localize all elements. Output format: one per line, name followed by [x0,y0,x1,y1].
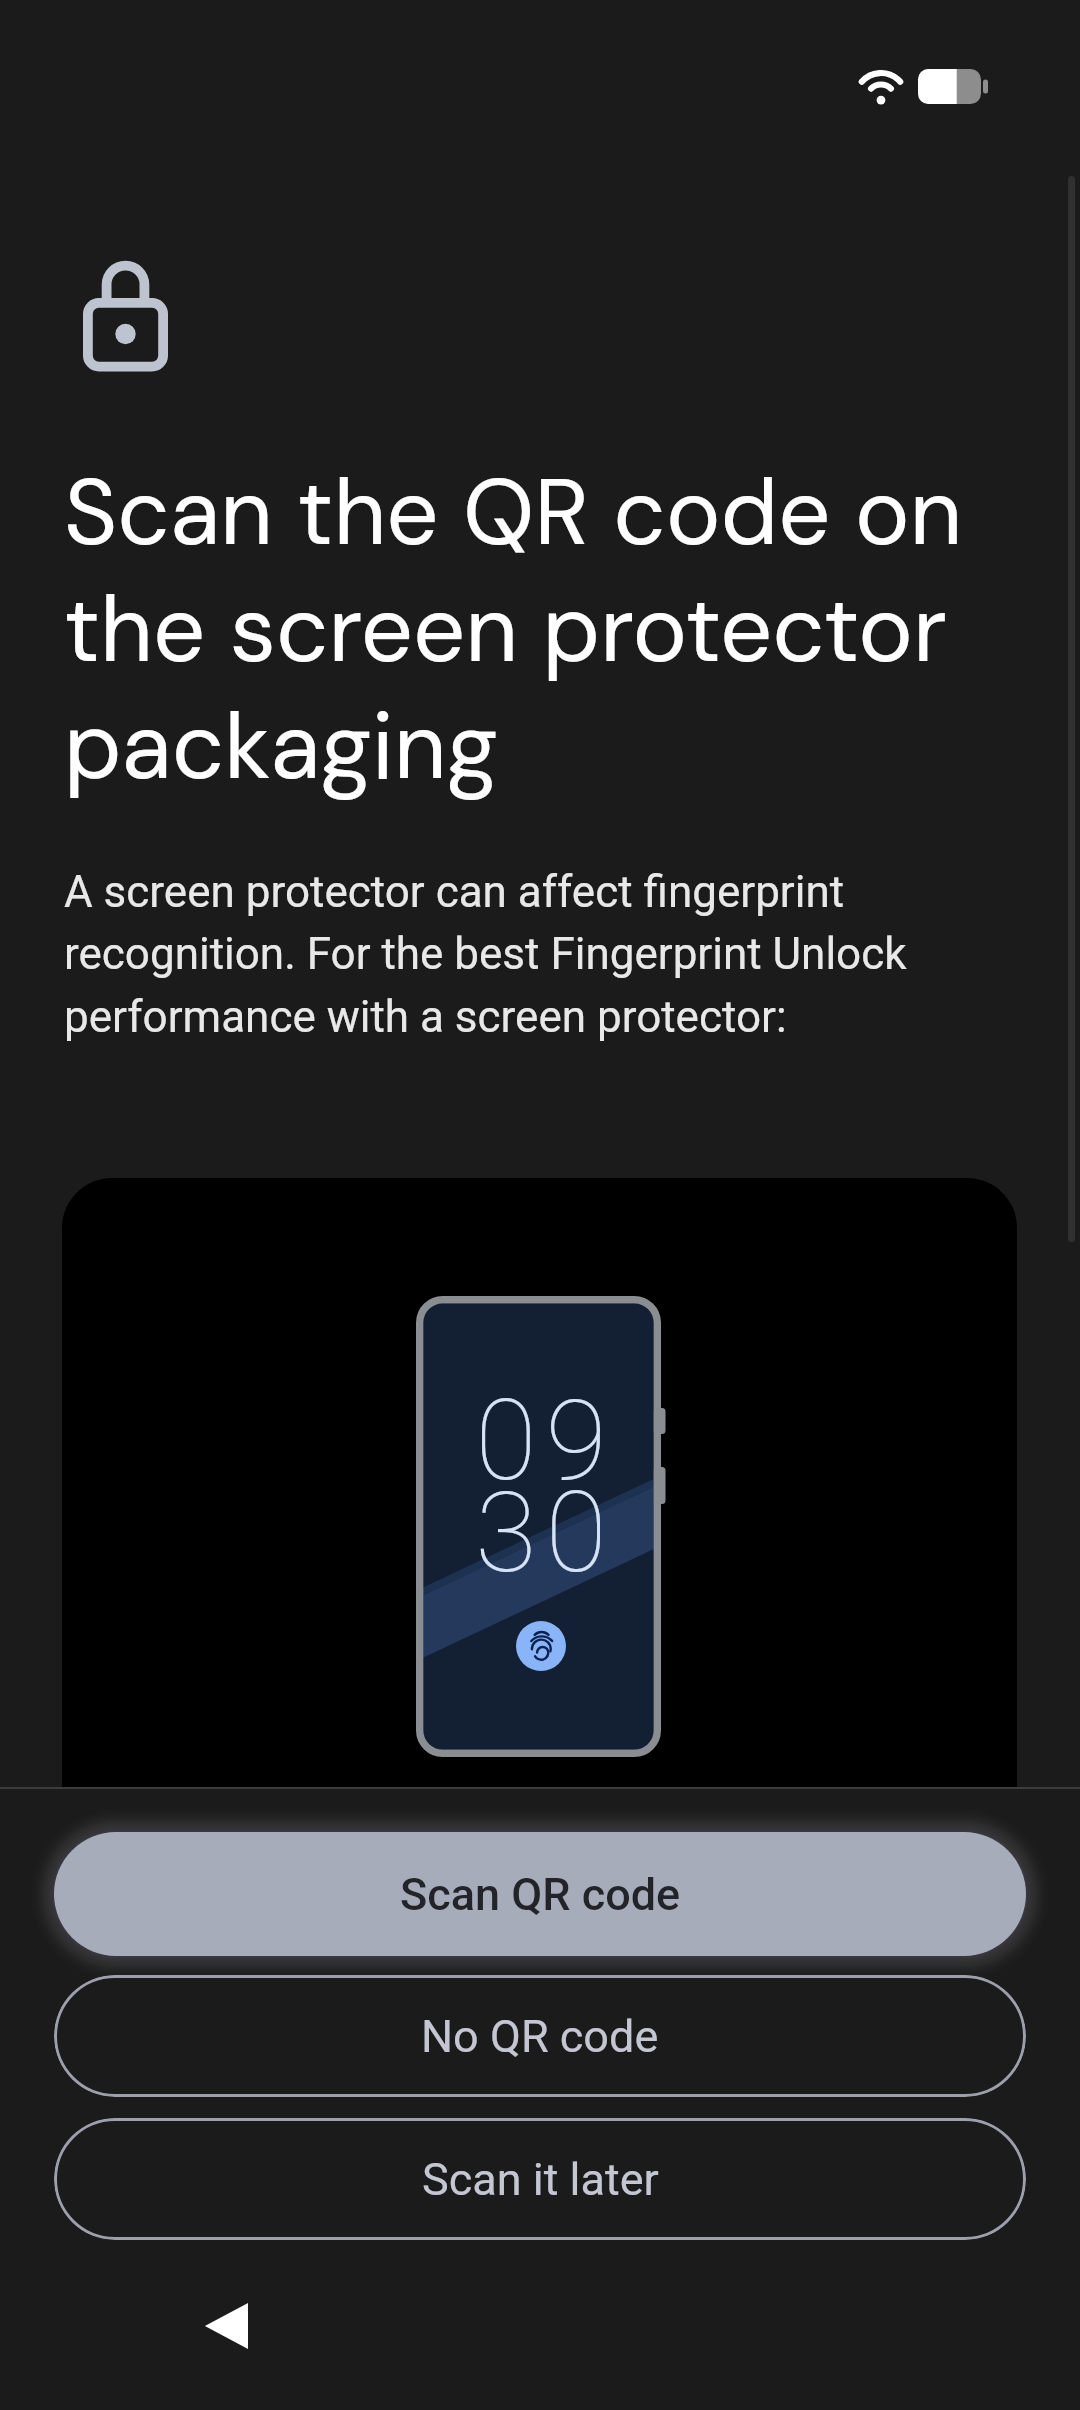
button[interactable]: Back [178,2278,274,2374]
button[interactable]: No QR code [54,1975,1026,2097]
staticText: Scan it later [422,2153,659,2206]
button[interactable]: Scan QR code [54,1832,1026,1956]
staticText: Scan the QR code on the screen protector… [64,453,1016,807]
staticText: No QR code [421,2010,659,2063]
button[interactable]: Scan it later [54,2118,1026,2240]
staticText: 09 30 [424,1375,667,1598]
staticText: Scan QR code [400,1868,681,1921]
staticText: A screen protector can affect fingerprin… [64,866,980,1043]
